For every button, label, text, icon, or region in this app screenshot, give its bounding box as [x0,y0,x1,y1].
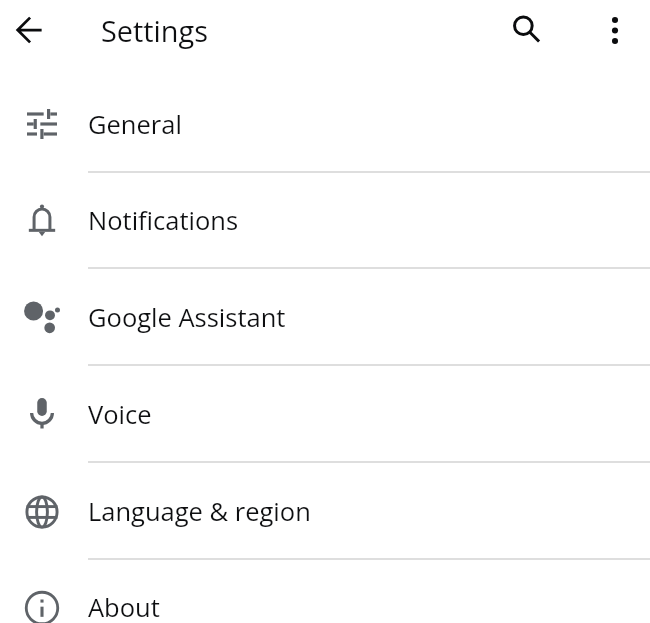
button[interactable]: Search [502,5,550,53]
button[interactable]: Voice [0,366,650,463]
button[interactable]: Language & region [0,463,650,560]
staticText: Google Assistant [88,300,286,335]
staticText: General [88,107,182,142]
button[interactable]: Notifications [0,172,650,269]
button[interactable]: General [0,76,650,173]
staticText: About [88,590,160,623]
button[interactable]: Google Assistant [0,269,650,366]
staticText: Settings [101,11,208,50]
button[interactable]: Back [5,6,53,54]
button[interactable]: More options [591,6,639,54]
staticText: Language & region [88,494,311,529]
button[interactable]: About [0,559,650,623]
staticText: Voice [88,397,152,432]
staticText: Notifications [88,203,239,238]
